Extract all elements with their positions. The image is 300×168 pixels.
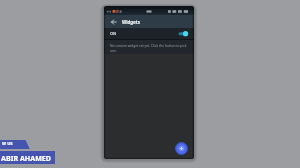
- button[interactable]: W US: [0, 140, 30, 149]
- staticText: Widgets: [122, 19, 140, 25]
- button[interactable]: ABIR AHAMED: [0, 151, 55, 164]
- staticText: W US: [2, 141, 13, 147]
- staticText: No custom widget set yet. Click the butt…: [110, 43, 187, 47]
- staticText: ON: [110, 31, 117, 36]
- button[interactable]: [110, 18, 118, 26]
- staticText: one.: [110, 48, 117, 52]
- staticText: ABIR AHAMED: [1, 153, 51, 163]
- button[interactable]: ON: [104, 28, 194, 39]
- button[interactable]: [175, 142, 188, 155]
